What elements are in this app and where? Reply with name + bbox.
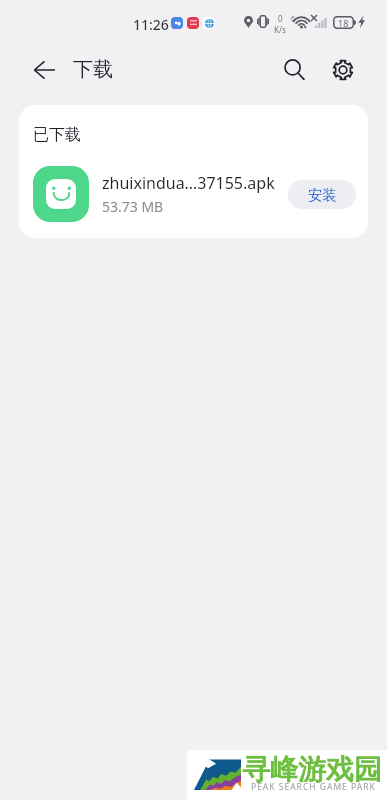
staticText: 53.73 MB — [102, 197, 164, 216]
button[interactable]: 安装 — [288, 180, 356, 209]
button[interactable]: Search — [274, 49, 314, 89]
button[interactable]: zhuixindua…37155.apk — [19, 158, 368, 230]
staticText: 已下载 — [33, 125, 81, 145]
staticText: K/s — [274, 24, 286, 35]
staticText: 11:26 — [133, 15, 169, 34]
button[interactable]: Back — [24, 50, 64, 90]
staticText: 下载 — [73, 57, 113, 82]
staticText: 安装 — [308, 186, 337, 204]
staticText: 18 — [338, 17, 349, 29]
staticText: 6 — [291, 14, 296, 24]
staticText: zhuixindua…37155.apk — [102, 172, 275, 194]
button[interactable]: Settings — [323, 50, 363, 90]
staticText: 0 — [278, 13, 283, 24]
staticText: 寻峰游戏园 — [242, 752, 382, 787]
staticText: PEAK SEARCH GAME PARK — [251, 781, 376, 793]
